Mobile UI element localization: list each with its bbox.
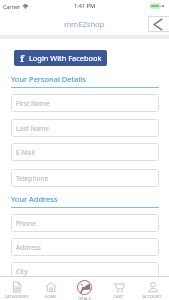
button[interactable]: HOME [33, 277, 67, 300]
staticText: ACCOUNT [142, 294, 162, 300]
button[interactable]: City [11, 262, 159, 280]
button[interactable]: Last Name [11, 119, 159, 137]
staticText: HOME [44, 294, 57, 300]
button[interactable]: f [14, 50, 107, 66]
staticText: Telephone [16, 174, 49, 183]
staticText: CATEGORIES [4, 294, 29, 300]
staticText: 1:41 PM [74, 2, 96, 10]
button[interactable]: Back [148, 16, 169, 32]
staticText: CART [113, 294, 124, 300]
button[interactable]: DEALS [67, 277, 101, 300]
staticText: First Name [16, 99, 50, 108]
staticText: DEALS [78, 296, 91, 300]
button[interactable]: Address [11, 238, 159, 256]
staticText: Address [16, 243, 41, 252]
staticText: Your Address [11, 194, 58, 204]
staticText: Carrier [3, 3, 21, 10]
button[interactable]: CATEGORIES [0, 277, 33, 300]
button[interactable]: ACCOUNT [135, 277, 169, 300]
button[interactable]: CART [101, 277, 135, 300]
staticText: f [20, 52, 24, 65]
button[interactable]: Telephone [11, 169, 159, 187]
staticText: Phone [16, 219, 36, 228]
button[interactable]: First Name [11, 94, 159, 112]
staticText: Last Name [16, 124, 50, 133]
staticText: Your Personal Details [11, 74, 86, 84]
staticText: Login With Facebook [29, 53, 102, 63]
staticText: City [16, 267, 28, 276]
button[interactable]: Phone [11, 214, 159, 232]
staticText: E-Mail [16, 148, 35, 157]
staticText: mmEZshop [64, 19, 105, 29]
button[interactable]: E-Mail [11, 143, 159, 161]
